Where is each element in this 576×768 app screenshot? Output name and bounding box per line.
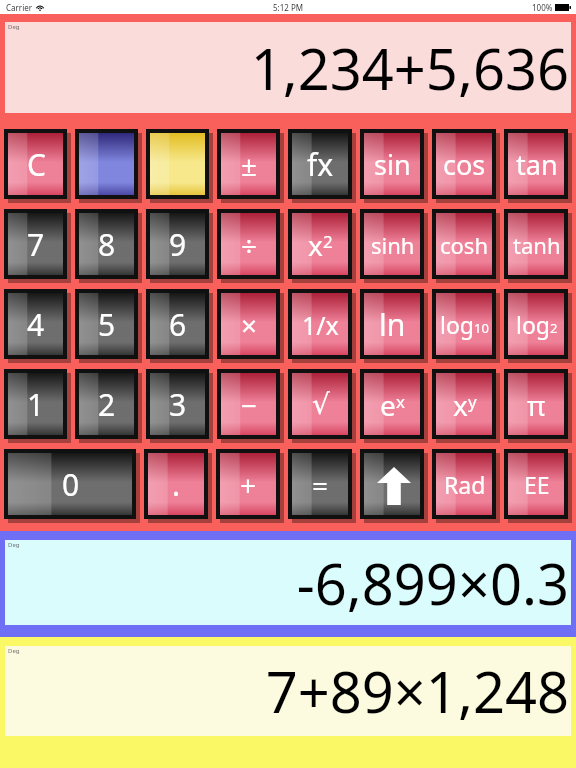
button[interactable]: x [432,369,500,443]
button[interactable]: EE [504,449,572,523]
staticText: Deg [8,541,20,549]
button[interactable]: Deg [5,540,571,625]
staticText: e [380,386,396,424]
staticText: -6,899×0.3 [296,545,569,621]
button[interactable]: Shift up [360,449,428,523]
button[interactable]: 4 [4,289,71,363]
button[interactable]: sinh [360,209,428,283]
staticText: y [468,390,477,413]
button[interactable]: C [4,129,71,203]
staticText: cos [443,146,486,183]
button[interactable]: × [217,289,284,363]
staticText: tan [516,146,558,183]
staticText: 1,234+5,636 [250,30,569,106]
button[interactable]: e [360,369,428,443]
staticText: π [527,386,546,424]
button[interactable]: cosh [432,209,500,283]
button[interactable]: + [216,449,284,523]
button[interactable]: Deg [5,646,571,736]
staticText: 4 [27,304,45,345]
button[interactable]: Yellow memory [146,129,213,203]
staticText: Deg [8,23,20,31]
button[interactable]: 1/x [288,289,356,363]
button[interactable]: 1 [4,369,71,443]
staticText: 100% [532,2,553,13]
button[interactable]: √ [288,369,356,443]
staticText: ln [379,304,406,345]
button[interactable]: fx [288,129,356,203]
button[interactable]: tanh [504,209,572,283]
staticText: √ [312,388,330,421]
staticText: sinh [371,230,415,260]
staticText: 7+89×1,248 [265,653,569,729]
button[interactable]: Blue memory [75,129,142,203]
staticText: Deg [8,647,20,655]
staticText: 2 [98,384,116,425]
staticText: log [440,309,474,340]
staticText: sin [374,146,411,183]
button[interactable]: ± [217,129,284,203]
staticText: × [241,306,258,344]
staticText: . [172,464,181,505]
button[interactable]: 5 [75,289,142,363]
staticText: + [240,466,257,504]
staticText: 1 [27,384,45,425]
button[interactable]: Rad [432,449,500,523]
staticText: 0 [62,464,80,505]
staticText: − [241,386,258,424]
staticText: 5:12 PM [273,2,304,13]
staticText: ÷ [241,226,258,264]
staticText: 10 [474,319,489,337]
button[interactable]: ÷ [217,209,284,283]
button[interactable]: 2 [75,369,142,443]
staticText: 8 [98,224,116,265]
staticText: 7 [27,224,45,265]
button[interactable]: . [144,449,212,523]
button[interactable]: Deg [5,22,571,113]
button[interactable]: 0 [4,449,140,523]
staticText: Rad [444,469,486,500]
button[interactable]: ln [360,289,428,363]
staticText: log [516,309,550,340]
button[interactable]: π [504,369,572,443]
staticText: ± [241,146,258,184]
staticText: cosh [440,230,489,260]
button[interactable]: 9 [146,209,213,283]
staticText: C [27,144,46,185]
staticText: x [396,390,405,413]
staticText: x [453,386,468,424]
staticText: fx [307,144,334,185]
button[interactable]: log [432,289,500,363]
staticText: tanh [513,230,561,260]
staticText: 2 [323,230,333,253]
button[interactable]: 7 [4,209,71,283]
button[interactable]: tan [504,129,572,203]
staticText: 9 [169,224,187,265]
staticText: EE [524,469,550,500]
staticText: x [308,226,323,264]
button[interactable]: = [288,449,356,523]
button[interactable]: cos [432,129,500,203]
button[interactable]: log [504,289,572,363]
button[interactable]: x [288,209,356,283]
staticText: Carrier [6,2,33,13]
button[interactable]: 3 [146,369,213,443]
staticText: 5 [98,304,116,345]
staticText: 6 [169,304,187,345]
staticText: = [312,466,329,504]
button[interactable]: 8 [75,209,142,283]
button[interactable]: 6 [146,289,213,363]
button[interactable]: sin [360,129,428,203]
staticText: 1/x [302,308,339,342]
button[interactable]: − [217,369,284,443]
staticText: 2 [550,319,558,337]
staticText: 3 [169,384,187,425]
